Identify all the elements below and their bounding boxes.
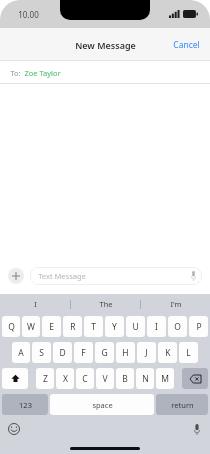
button[interactable]: Text Message [30,267,202,285]
button[interactable]: H [116,342,135,363]
staticText: I [155,321,158,333]
button[interactable]: F [74,342,93,363]
staticText: H [122,347,129,359]
staticText: M [161,373,169,385]
button[interactable]: E [42,316,61,337]
button[interactable]: Q [2,316,20,337]
button[interactable]: A [12,342,30,363]
staticText: L [186,347,191,359]
staticText: F [81,347,86,359]
staticText: X [63,373,68,385]
staticText: D [59,347,66,359]
button[interactable]: W [22,316,40,337]
staticText: K [165,347,171,359]
button[interactable]: U [126,316,145,337]
button[interactable]: To: [0,61,210,84]
button[interactable]: return [156,394,208,415]
button[interactable]: K [158,342,177,363]
button[interactable]: Add attachment [8,268,24,284]
button[interactable]: I [147,316,166,337]
staticText: O [174,321,181,333]
staticText: A [18,347,24,359]
button[interactable]: C [76,368,94,389]
button[interactable]: D [53,342,72,363]
staticText: I'm [170,299,182,309]
button[interactable]: Z [36,368,54,389]
staticText: E [49,321,54,333]
staticText: C [82,373,88,385]
staticText: The [99,299,113,309]
button[interactable]: I'm [141,294,210,314]
button[interactable]: Shift [2,368,28,389]
staticText: S [39,347,44,359]
staticText: return [171,400,194,410]
button[interactable]: space [50,394,154,415]
staticText: N [142,373,149,385]
staticText: To: [10,68,21,78]
button[interactable]: G [95,342,114,363]
staticText: T [91,321,96,333]
button[interactable]: L [179,342,198,363]
button[interactable]: Dictate [191,271,196,281]
button[interactable]: B [116,368,134,389]
button[interactable]: X [56,368,74,389]
button[interactable]: P [189,316,208,337]
button[interactable]: Y [105,316,124,337]
staticText: B [122,373,128,385]
staticText: New Message [75,39,136,51]
button[interactable]: N [136,368,154,389]
staticText: Cancel [173,39,200,51]
staticText: V [102,373,108,385]
button[interactable]: Emoji [8,423,20,435]
staticText: P [196,321,202,333]
staticText: U [132,321,139,333]
staticText: J [145,347,148,359]
staticText: G [101,347,108,359]
staticText: W [27,321,35,333]
button[interactable]: S [32,342,51,363]
button[interactable]: M [156,368,174,389]
staticText: Q [8,321,15,333]
button[interactable]: The [71,294,140,314]
button[interactable]: O [168,316,187,337]
staticText: I [34,299,37,309]
staticText: Zoe Taylor [24,68,61,78]
staticText: 123 [19,400,32,410]
button[interactable]: T [84,316,103,337]
button[interactable]: R [63,316,82,337]
staticText: space [92,400,113,410]
staticText: Z [43,373,48,385]
staticText: Text Message [38,271,86,281]
staticText: Y [112,321,117,333]
button[interactable]: Dictation [194,424,200,435]
button[interactable]: J [137,342,156,363]
button[interactable]: V [96,368,114,389]
button[interactable]: Backspace [182,368,208,389]
button[interactable]: 123 [2,394,48,415]
button[interactable]: I [0,294,70,314]
staticText: R [70,321,76,333]
button[interactable]: Cancel [163,31,210,59]
staticText: 10.00 [18,9,39,20]
